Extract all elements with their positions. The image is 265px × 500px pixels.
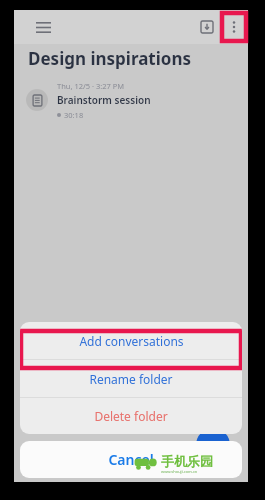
staticText: Brainstorm session [57, 93, 151, 107]
staticText: 手机乐园 [161, 453, 213, 469]
staticText: Delete folder [94, 408, 168, 424]
button[interactable]: New conversation [196, 428, 230, 462]
button[interactable]: Delete folder [20, 398, 242, 434]
staticText: Thu, 12/5 · 3:27 PM [57, 81, 125, 91]
button[interactable]: More options [222, 13, 246, 41]
button[interactable]: Thu, 12/5 · 3:27 PM [14, 78, 248, 122]
staticText: www.shouji.com.cn [161, 469, 198, 474]
staticText: 30:18 [64, 110, 84, 120]
button[interactable]: Download [194, 14, 220, 40]
button[interactable]: Cancel [20, 441, 242, 478]
staticText: Rename folder [89, 371, 173, 387]
staticText: Cancel [108, 450, 154, 469]
button[interactable]: Menu [28, 12, 58, 42]
button[interactable]: Rename folder [20, 360, 242, 397]
staticText: Add conversations [79, 333, 184, 349]
staticText: Design inspirations [28, 47, 192, 70]
button[interactable]: Add conversations [20, 322, 242, 359]
